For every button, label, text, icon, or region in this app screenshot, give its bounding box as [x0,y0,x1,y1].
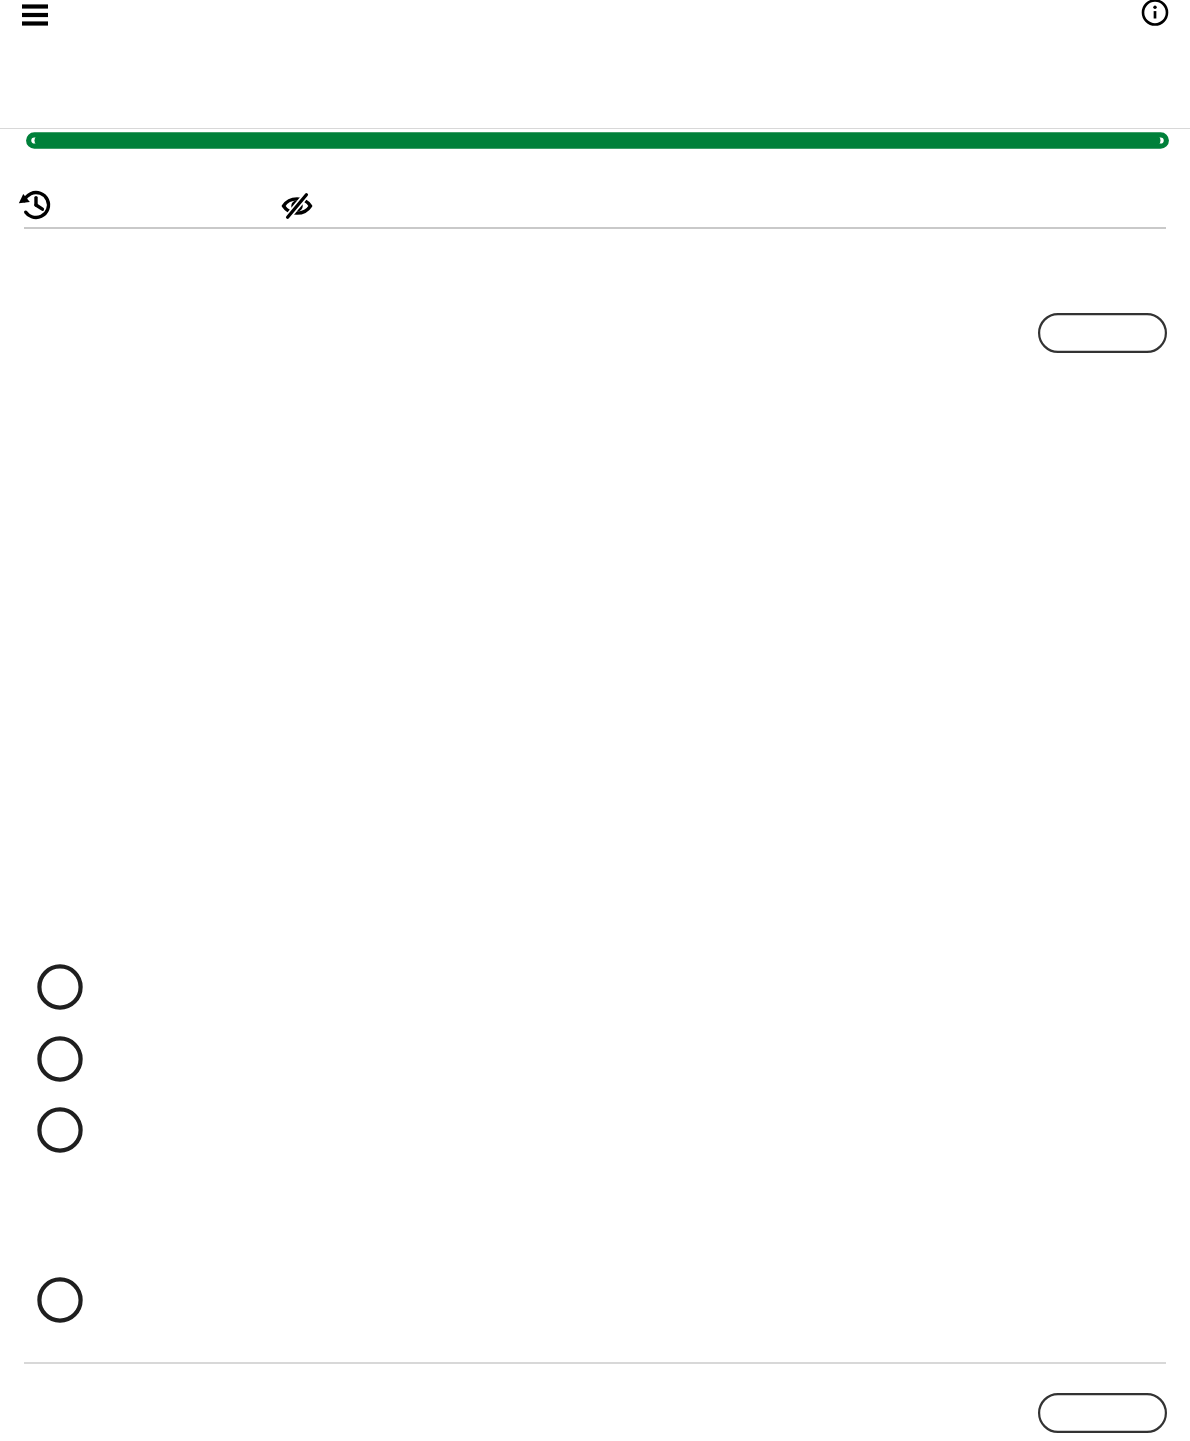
button[interactable]: Continue [1038,1393,1167,1433]
button[interactable]: Select option [37,964,83,1010]
button[interactable]: Action [1038,313,1167,353]
button[interactable]: Information [1130,0,1180,34]
button[interactable]: Hidden [268,180,326,224]
button[interactable]: Select option [37,1107,83,1153]
button[interactable]: Select option [37,1277,83,1323]
button[interactable]: Select option [37,1036,83,1082]
button[interactable]: History [8,180,66,224]
button[interactable]: Open navigation menu [8,0,64,32]
